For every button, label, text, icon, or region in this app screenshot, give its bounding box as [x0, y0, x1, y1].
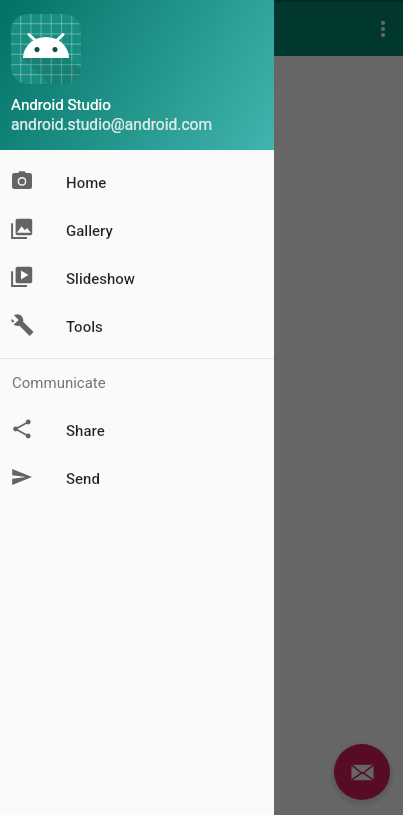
button[interactable]: Share: [0, 407, 274, 455]
button[interactable]: Slideshow: [0, 255, 274, 303]
button[interactable]: Tools: [0, 303, 274, 351]
button[interactable]: Home: [0, 159, 274, 207]
button[interactable]: More options: [364, 10, 402, 48]
staticText: Gallery: [66, 222, 113, 240]
staticText: Slideshow: [66, 270, 135, 288]
staticText: Send: [66, 470, 100, 488]
staticText: Home: [66, 174, 107, 192]
staticText: Tools: [66, 318, 103, 336]
staticText: Share: [66, 422, 105, 440]
staticText: android.studio@android.com: [11, 116, 213, 134]
button[interactable]: Send: [0, 455, 274, 503]
button[interactable]: Send email: [334, 744, 390, 800]
button[interactable]: Gallery: [0, 207, 274, 255]
staticText: Android Studio: [11, 96, 111, 114]
staticText: Communicate: [12, 374, 106, 392]
